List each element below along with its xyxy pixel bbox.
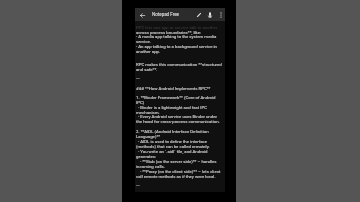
staticText: - AIDL is used to define the interface xyxy=(138,139,208,144)
staticText: --- xyxy=(136,76,140,81)
staticText: call remote methods as if they were loca… xyxy=(136,174,216,179)
staticText: service. xyxy=(136,39,151,44)
staticText: 1. **Binder Framework** (Core of Android xyxy=(136,95,216,100)
button[interactable]: Back xyxy=(137,10,147,20)
button[interactable]: More options xyxy=(216,10,225,20)
button[interactable]: Edit xyxy=(194,10,204,20)
staticText: - **Stub (on the server side)** – handle… xyxy=(140,159,217,164)
staticText: --- xyxy=(136,183,140,188)
staticText: ### **How Android Implements RPC** xyxy=(136,86,211,91)
button[interactable]: Voice input xyxy=(205,10,215,20)
staticText: - You write an `.aidl` file, and Android xyxy=(138,149,208,154)
staticText: the hood for cross-process communication… xyxy=(136,119,220,124)
staticText: generates: xyxy=(136,154,157,159)
staticText: Language)** xyxy=(136,134,161,139)
staticText: (methods) that can be called remotely. xyxy=(136,144,210,149)
staticText: incoming calls. xyxy=(136,164,165,169)
staticText: - Every Android service uses Binder unde… xyxy=(138,114,217,119)
staticText: RPC lets one app or service talk to anot… xyxy=(136,25,218,30)
staticText: mechanism. xyxy=(136,110,160,115)
staticText: - A media app talking to the system medi… xyxy=(136,34,217,39)
staticText: IPC) xyxy=(136,100,145,105)
staticText: - **Proxy (on the client side)** – lets … xyxy=(140,169,221,174)
staticText: Notepad Free xyxy=(152,12,197,17)
staticText: and safe**. xyxy=(136,67,158,72)
staticText: - Binder is a lightweight and fast IPC xyxy=(138,105,208,110)
staticText: another app. xyxy=(136,49,161,54)
staticText: RPC makes this communication **structure… xyxy=(136,62,222,67)
staticText: - An app talking to a background service… xyxy=(136,44,217,49)
staticText: 2. **AIDL (Android Interface Definition xyxy=(136,129,209,134)
staticText: across process boundaries**, like: xyxy=(136,30,202,35)
